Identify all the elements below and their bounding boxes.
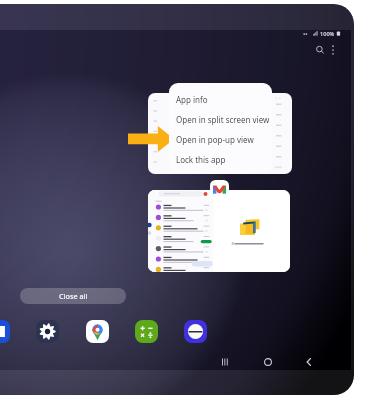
button[interactable] bbox=[148, 190, 290, 272]
button[interactable]: Settings bbox=[36, 320, 59, 343]
staticText: Close all bbox=[59, 291, 88, 301]
staticText: Open in split screen view bbox=[176, 114, 270, 125]
staticText: Open in pop-up view bbox=[176, 134, 254, 145]
button[interactable]: Home bbox=[259, 353, 277, 371]
button[interactable]: Maps bbox=[86, 320, 109, 343]
staticText: 100% bbox=[320, 30, 335, 38]
button[interactable]: Files bbox=[0, 320, 10, 343]
button[interactable] bbox=[148, 93, 292, 174]
button[interactable]: Calculator bbox=[135, 320, 158, 343]
button[interactable]: Lock this app bbox=[169, 149, 272, 169]
button[interactable]: Close all bbox=[20, 288, 126, 304]
button[interactable]: Open in pop-up view bbox=[169, 129, 272, 149]
button[interactable]: App info bbox=[169, 89, 272, 109]
button[interactable]: Back bbox=[300, 353, 318, 371]
button[interactable]: Do not disturb bbox=[184, 320, 207, 343]
staticText: App info bbox=[176, 94, 208, 105]
button[interactable]: More options bbox=[324, 41, 342, 59]
button[interactable]: Open in split screen view bbox=[169, 109, 272, 129]
staticText: Lock this app bbox=[176, 154, 226, 165]
button[interactable]: Search bbox=[311, 41, 329, 59]
button[interactable]: Recents bbox=[216, 353, 234, 371]
